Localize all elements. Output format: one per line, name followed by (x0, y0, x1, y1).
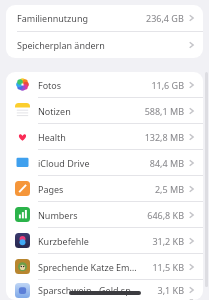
button[interactable]: Pages (6, 176, 203, 202)
button[interactable]: Fotos (6, 72, 203, 98)
staticText: 236,4 GB (146, 12, 184, 24)
staticText: Health (38, 131, 66, 143)
staticText: Notizen (38, 105, 71, 117)
other: Home indicator (69, 291, 141, 295)
staticText: 588,1 MB (144, 105, 184, 117)
button[interactable]: Sprechende Katze Em… (6, 254, 203, 280)
staticText: Sparschwein - Geld sp… (38, 284, 138, 296)
staticText: 31,2 KB (152, 235, 184, 247)
staticText: Pages (38, 183, 64, 195)
staticText: 11,6 GB (151, 79, 184, 91)
staticText: Kurzbefehle (38, 235, 89, 247)
staticText: 2,5 MB (154, 183, 184, 195)
staticText: 3,1 KB (157, 284, 184, 296)
staticText: Numbers (38, 209, 78, 221)
button[interactable]: Familiennutzung (6, 5, 203, 32)
staticText: Familiennutzung (17, 12, 89, 24)
staticText: Sprechende Katze Em… (38, 261, 137, 273)
staticText: Speicherplan ändern (17, 39, 105, 51)
button[interactable]: Kurzbefehle (6, 228, 203, 254)
button[interactable]: Numbers (6, 202, 203, 228)
staticText: 84,4 MB (149, 157, 184, 169)
staticText: iCloud Drive (38, 157, 90, 169)
button[interactable]: Sparschwein - Geld sp… (6, 280, 203, 300)
staticText: 132,8 MB (144, 131, 184, 143)
button[interactable]: iCloud Drive (6, 150, 203, 176)
staticText: 646,8 KB (147, 209, 184, 221)
button[interactable]: Health (6, 124, 203, 150)
staticText: 11,5 KB (152, 261, 184, 273)
button[interactable]: Speicherplan ändern (6, 32, 203, 58)
button[interactable]: Notizen (6, 98, 203, 124)
staticText: Fotos (38, 79, 62, 91)
